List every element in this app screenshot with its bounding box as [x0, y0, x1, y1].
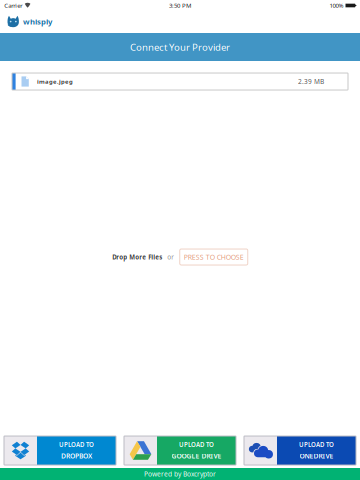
- staticText: 3:50 PM: [169, 1, 191, 10]
- button[interactable]: Upload to Google Drive: [124, 436, 236, 465]
- staticText: UPLOAD TO: [299, 440, 334, 449]
- button[interactable]: image.jpeg: [12, 73, 348, 90]
- staticText: UPLOAD TO: [179, 440, 214, 449]
- button[interactable]: Upload to Dropbox: [4, 436, 116, 465]
- staticText: Powered by Boxcryptor: [144, 469, 216, 479]
- staticText: GOOGLE DRIVE: [171, 451, 221, 461]
- staticText: or: [167, 253, 174, 261]
- button[interactable]: Upload to OneDrive: [244, 436, 356, 465]
- staticText: DROPBOX: [61, 451, 92, 461]
- staticText: image.jpeg: [37, 77, 73, 85]
- staticText: UPLOAD TO: [59, 440, 94, 449]
- staticText: Drop More Files: [112, 253, 162, 261]
- staticText: 100%: [329, 1, 343, 10]
- staticText: ONEDRIVE: [299, 451, 333, 461]
- staticText: 2.39 MB: [298, 77, 324, 86]
- button[interactable]: Connect Your Provider: [0, 33, 360, 61]
- staticText: whisply: [23, 16, 52, 27]
- staticText: PRESS TO CHOOSE: [184, 252, 244, 262]
- staticText: Carrier: [4, 1, 22, 10]
- staticText: Connect Your Provider: [130, 40, 230, 54]
- button[interactable]: PRESS TO CHOOSE: [180, 249, 248, 265]
